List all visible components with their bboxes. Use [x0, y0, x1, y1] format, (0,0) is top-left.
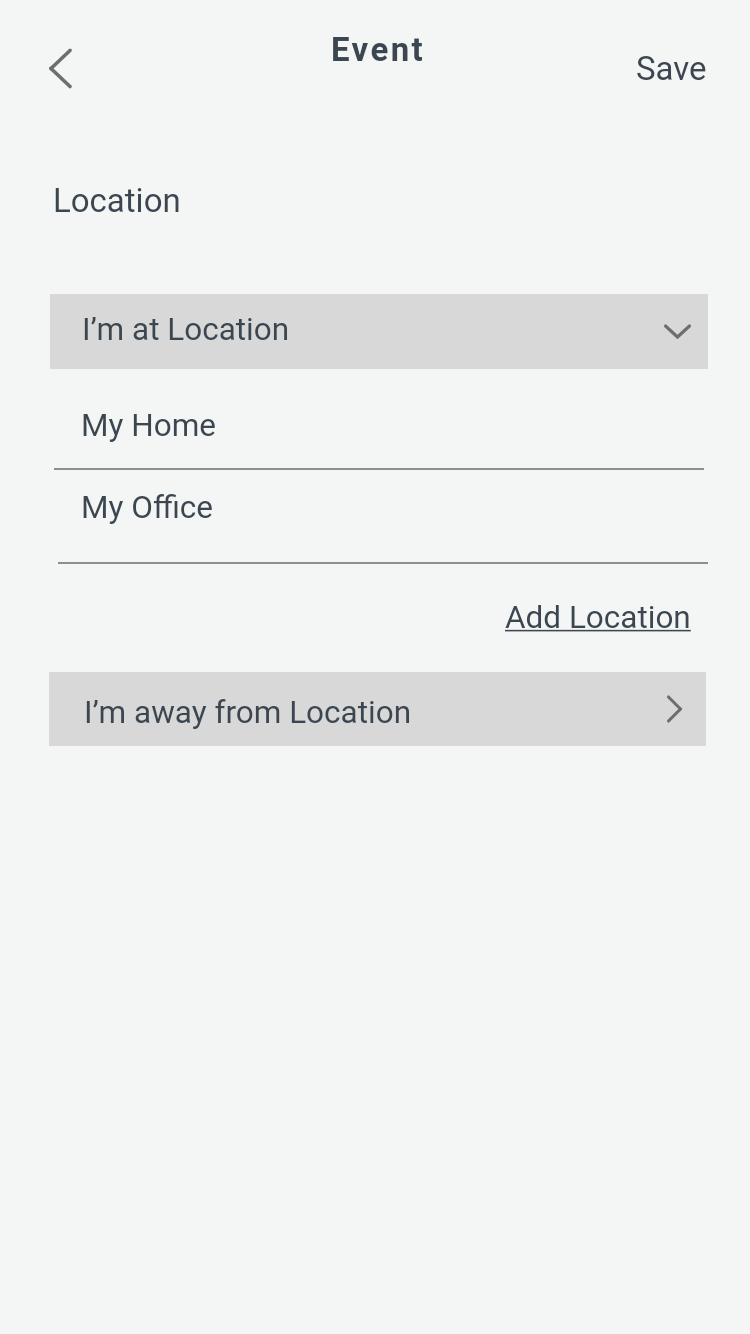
button[interactable]: I’m at Location [50, 294, 708, 369]
staticText: Save [636, 49, 707, 88]
button[interactable]: My Home [50, 380, 708, 470]
button[interactable]: Add Location [488, 592, 704, 644]
staticText: I’m away from Location [84, 694, 412, 731]
staticText: My Home [81, 407, 216, 444]
staticText: Add Location [505, 599, 691, 636]
staticText: My Office [81, 489, 213, 526]
button[interactable]: My Office [50, 472, 708, 562]
button[interactable]: Save [615, 42, 725, 100]
button[interactable]: Back [18, 32, 92, 106]
staticText: Event [331, 30, 426, 69]
staticText: Location [53, 181, 181, 220]
staticText: I’m at Location [82, 311, 290, 348]
button[interactable]: I’m away from Location [49, 672, 706, 746]
